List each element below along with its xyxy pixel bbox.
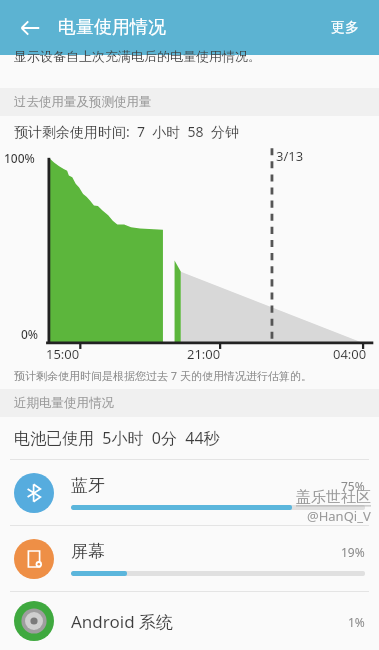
staticText: 0% [21, 326, 39, 342]
button[interactable]: 屏幕 [0, 526, 379, 591]
staticText: 3/13 [276, 147, 304, 165]
staticText: @HanQi_V [307, 507, 371, 525]
staticText: 1% [348, 614, 365, 630]
staticText: 盖乐世社区 [296, 488, 371, 507]
staticText: 近期电量使用情况 [14, 395, 114, 411]
button[interactable]: Back [10, 8, 50, 48]
staticText: 75% [341, 478, 365, 494]
staticText: 更多 [331, 19, 359, 37]
staticText: 蓝牙 [71, 475, 105, 496]
button[interactable]: 更多 [325, 13, 365, 43]
staticText: Android 系统 [71, 610, 174, 633]
staticText: 预计剩余使用时间是根据您过去 7 天的使用情况进行估算的。 [14, 368, 313, 383]
staticText: 21:00 [187, 345, 221, 363]
button[interactable]: 蓝牙 [0, 460, 379, 525]
staticText: 预计剩余使用时间: 7 小时 58 分钟 [14, 122, 239, 141]
button[interactable]: Android 系统 [0, 592, 379, 650]
staticText: 15:00 [46, 345, 80, 363]
staticText: 显示设备自上次充满电后的电量使用情况。 [14, 48, 261, 64]
staticText: 电池已使用 5小时 0分 44秒 [14, 427, 220, 449]
staticText: 19% [341, 544, 365, 560]
staticText: 电量使用情况 [58, 16, 166, 39]
staticText: 过去使用量及预测使用量 [14, 94, 152, 110]
staticText: 100% [4, 150, 35, 166]
staticText: 屏幕 [71, 541, 105, 562]
staticText: 04:00 [333, 345, 367, 363]
